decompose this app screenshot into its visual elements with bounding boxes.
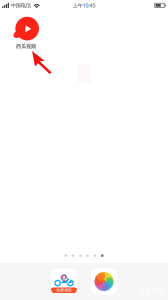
- staticText: 中国电信: [11, 2, 31, 9]
- button[interactable]: 西瓜视频: [6, 17, 46, 50]
- button[interactable]: 免费领取: [51, 268, 77, 294]
- staticText: 免费领取: [56, 288, 72, 293]
- staticText: 上午10:45: [72, 2, 95, 9]
- staticText: 西瓜视频: [16, 43, 36, 50]
- button[interactable]: [91, 268, 117, 294]
